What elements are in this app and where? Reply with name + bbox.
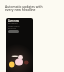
button[interactable] xyxy=(8,30,19,33)
staticText: Breaking news from around xyxy=(8,22,20,30)
staticText: Live now xyxy=(8,19,19,23)
staticText: Automatic updates with every new headlin… xyxy=(5,4,43,12)
